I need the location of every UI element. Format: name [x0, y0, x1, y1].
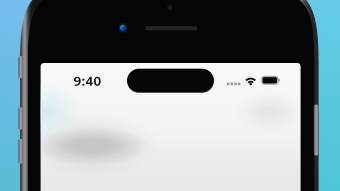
staticText: 9:40	[74, 72, 102, 89]
